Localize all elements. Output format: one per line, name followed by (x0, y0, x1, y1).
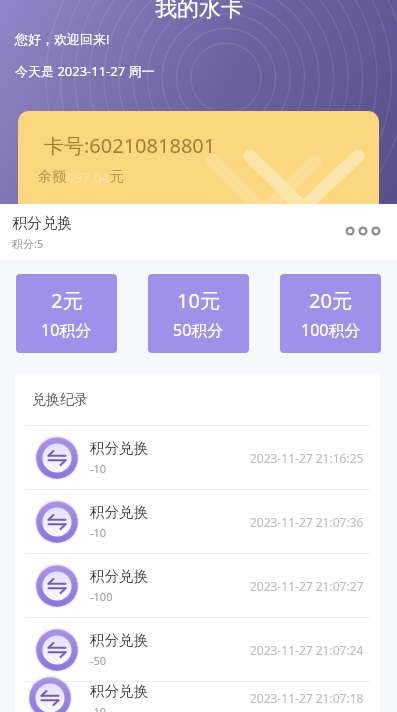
staticText: -100 (90, 589, 113, 604)
staticText: 积分兑换 (90, 631, 148, 649)
staticText: 积分兑换 (90, 503, 148, 521)
staticText: 余额 (38, 168, 66, 186)
staticText: 10积分 (41, 319, 92, 341)
button[interactable]: 2元 (16, 274, 117, 353)
staticText: 积分兑换 (90, 567, 148, 585)
staticText: 积分:5 (12, 236, 44, 251)
staticText: 2023-11-27 21:07:27 (250, 578, 364, 594)
staticText: 2023-11-27 21:16:25 (250, 450, 364, 466)
staticText: 2023-11-27 21:07:24 (250, 642, 364, 658)
staticText: 元 (110, 168, 124, 186)
staticText: 20元 (309, 287, 352, 314)
staticText: 2023-11-27 21:07:36 (250, 514, 364, 530)
button[interactable]: 积分兑换 (15, 554, 380, 617)
staticText: -10 (90, 461, 107, 476)
staticText: -50 (90, 653, 107, 668)
staticText: -10 (90, 704, 107, 712)
button[interactable]: 10元 (148, 274, 249, 353)
staticText: 497.04 (66, 168, 110, 187)
button[interactable]: 20元 (280, 274, 381, 353)
button[interactable]: 积分兑换 (15, 618, 380, 681)
button[interactable]: 卡号:60210818801 (18, 111, 379, 221)
staticText: 100积分 (301, 319, 361, 341)
staticText: 兑换纪录 (32, 391, 88, 409)
staticText: 50积分 (173, 319, 224, 341)
staticText: 今天是 2023-11-27 周一 (15, 62, 155, 80)
button[interactable]: 积分兑换 (15, 682, 380, 712)
staticText: 您好，欢迎回来! (15, 30, 110, 48)
button[interactable]: More options (340, 217, 386, 245)
staticText: -10 (90, 525, 107, 540)
button[interactable]: 积分兑换 (15, 490, 380, 553)
staticText: 10元 (177, 287, 220, 314)
staticText: 积分兑换 (12, 214, 72, 233)
button[interactable]: 积分兑换 (15, 426, 380, 489)
staticText: 2元 (51, 287, 83, 314)
staticText: 2023-11-27 21:07:18 (250, 690, 364, 706)
staticText: 卡号:60210818801 (44, 132, 216, 159)
staticText: 积分兑换 (90, 682, 148, 700)
staticText: 积分兑换 (90, 439, 148, 457)
staticText: 我的水卡 (155, 0, 243, 19)
